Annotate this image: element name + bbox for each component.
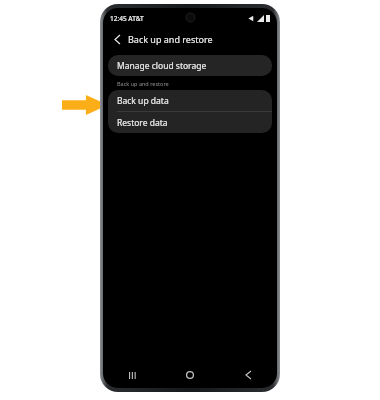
button[interactable]: Manage cloud storage (108, 55, 272, 76)
button[interactable]: Back (110, 32, 124, 46)
staticText: Restore data (117, 117, 168, 129)
button[interactable]: Back up data (108, 90, 272, 111)
button[interactable]: Recent apps (103, 362, 161, 388)
button[interactable]: Restore data (108, 112, 272, 133)
staticText: Manage cloud storage (117, 60, 207, 72)
staticText: 12:45 AT&T (110, 14, 144, 23)
button[interactable]: Home (161, 362, 219, 388)
button[interactable]: Back (219, 362, 277, 388)
staticText: Back up and restore (128, 33, 213, 45)
staticText: Back up and restore (117, 80, 169, 87)
staticText: Back up data (117, 95, 169, 107)
